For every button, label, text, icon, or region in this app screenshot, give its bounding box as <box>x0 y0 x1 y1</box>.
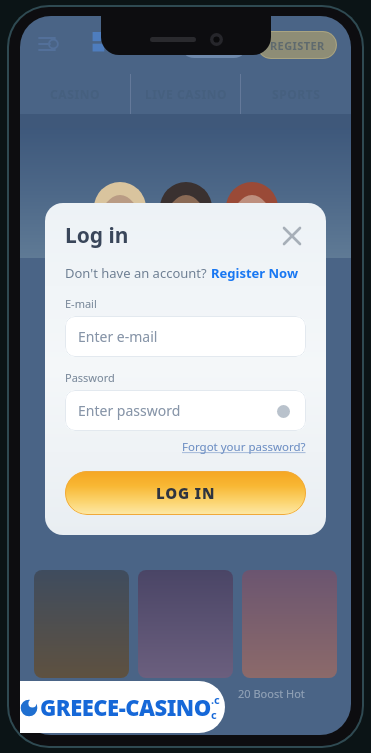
button[interactable]: LOG IN <box>65 471 306 515</box>
button[interactable]: JOKER CASHPOT <box>138 570 233 678</box>
button[interactable]: Forgot your password? <box>182 439 306 455</box>
staticText: Log in <box>65 221 129 250</box>
button[interactable]: REGISTER <box>257 31 337 59</box>
button[interactable]: Close <box>278 222 306 250</box>
staticText: Forgot your password? <box>182 439 306 455</box>
staticText: Enter e-mail <box>78 327 158 346</box>
staticText: Don't have an account? <box>65 264 211 282</box>
staticText: LOG IN <box>156 483 216 503</box>
staticText: Register Now <box>211 264 299 282</box>
staticText: E-mail <box>65 296 97 311</box>
button[interactable] <box>181 32 247 58</box>
button[interactable]: Home <box>86 30 120 60</box>
staticText: .cc <box>211 692 225 722</box>
button[interactable]: Enter password <box>65 390 306 431</box>
button[interactable]: BOOK of DRAGON <box>34 570 129 678</box>
staticText: REGISTER <box>270 38 325 53</box>
button[interactable]: Register Now <box>211 264 299 282</box>
staticText: 20 Boost Hot <box>238 686 305 701</box>
staticText: GREECE-CASINO <box>40 692 211 722</box>
button[interactable]: Enter e-mail <box>65 316 306 357</box>
button[interactable]: Show password <box>273 401 293 421</box>
button[interactable]: Menu <box>34 30 64 60</box>
staticText: Password <box>65 370 115 385</box>
staticText: Enter password <box>78 401 181 420</box>
button[interactable]: 20 BOOST HOT <box>242 570 337 678</box>
